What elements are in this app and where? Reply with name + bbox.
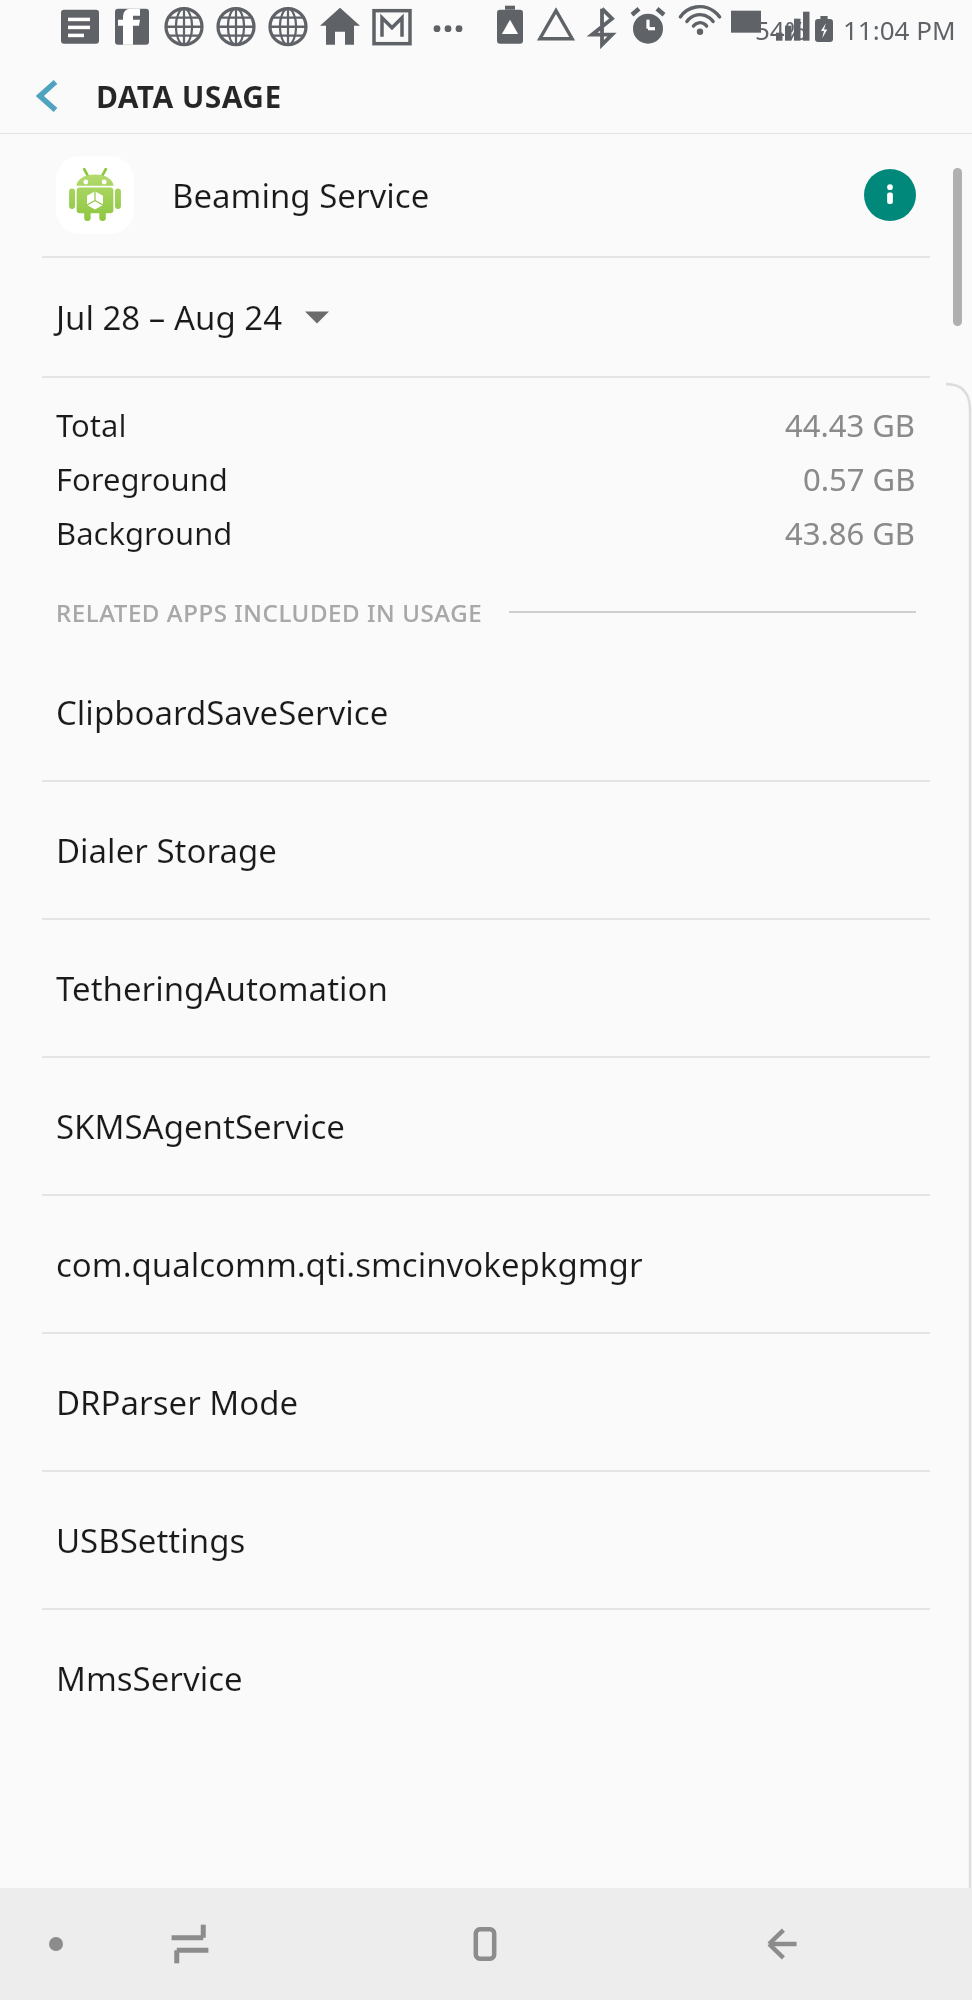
- staticText: Jul 28 – Aug 24: [56, 295, 283, 340]
- staticText: Total: [56, 404, 127, 446]
- button[interactable]: SKMSAgentService: [0, 1058, 972, 1194]
- button[interactable]: com.qualcomm.qti.smcinvokepkgmgr: [0, 1196, 972, 1332]
- staticText: 0.57 GB: [803, 458, 916, 500]
- staticText: Background: [56, 512, 233, 554]
- button[interactable]: Back: [733, 1896, 829, 1992]
- staticText: RELATED APPS INCLUDED IN USAGE: [56, 596, 483, 629]
- button[interactable]: Home: [437, 1896, 533, 1992]
- button[interactable]: USBSettings: [0, 1472, 972, 1608]
- staticText: 11:04 PM: [843, 12, 956, 47]
- staticText: MmsService: [56, 1656, 243, 1701]
- button[interactable]: Jul 28 – Aug 24: [0, 258, 972, 376]
- staticText: DRParser Mode: [56, 1380, 299, 1425]
- button[interactable]: ClipboardSaveService: [0, 644, 972, 780]
- button[interactable]: TetheringAutomation: [0, 920, 972, 1056]
- button[interactable]: Show keyboard: [34, 1922, 78, 1966]
- staticText: USBSettings: [56, 1518, 246, 1563]
- staticText: com.qualcomm.qti.smcinvokepkgmgr: [56, 1242, 643, 1287]
- staticText: 44.43 GB: [785, 404, 916, 446]
- button[interactable]: MmsService: [0, 1610, 972, 1746]
- button[interactable]: DRParser Mode: [0, 1334, 972, 1470]
- staticText: 43.86 GB: [785, 512, 916, 554]
- staticText: DATA USAGE: [96, 76, 282, 117]
- staticText: Beaming Service: [172, 173, 864, 218]
- staticText: Dialer Storage: [56, 828, 277, 873]
- staticText: Foreground: [56, 458, 228, 500]
- staticText: 54%: [755, 12, 807, 47]
- button[interactable]: App info: [864, 169, 916, 221]
- button[interactable]: Recent apps: [142, 1896, 238, 1992]
- button[interactable]: Back: [0, 58, 96, 134]
- button[interactable]: Beaming Service: [0, 134, 972, 256]
- staticText: TetheringAutomation: [56, 966, 388, 1011]
- staticText: ClipboardSaveService: [56, 690, 389, 735]
- button[interactable]: Dialer Storage: [0, 782, 972, 918]
- staticText: SKMSAgentService: [56, 1104, 345, 1149]
